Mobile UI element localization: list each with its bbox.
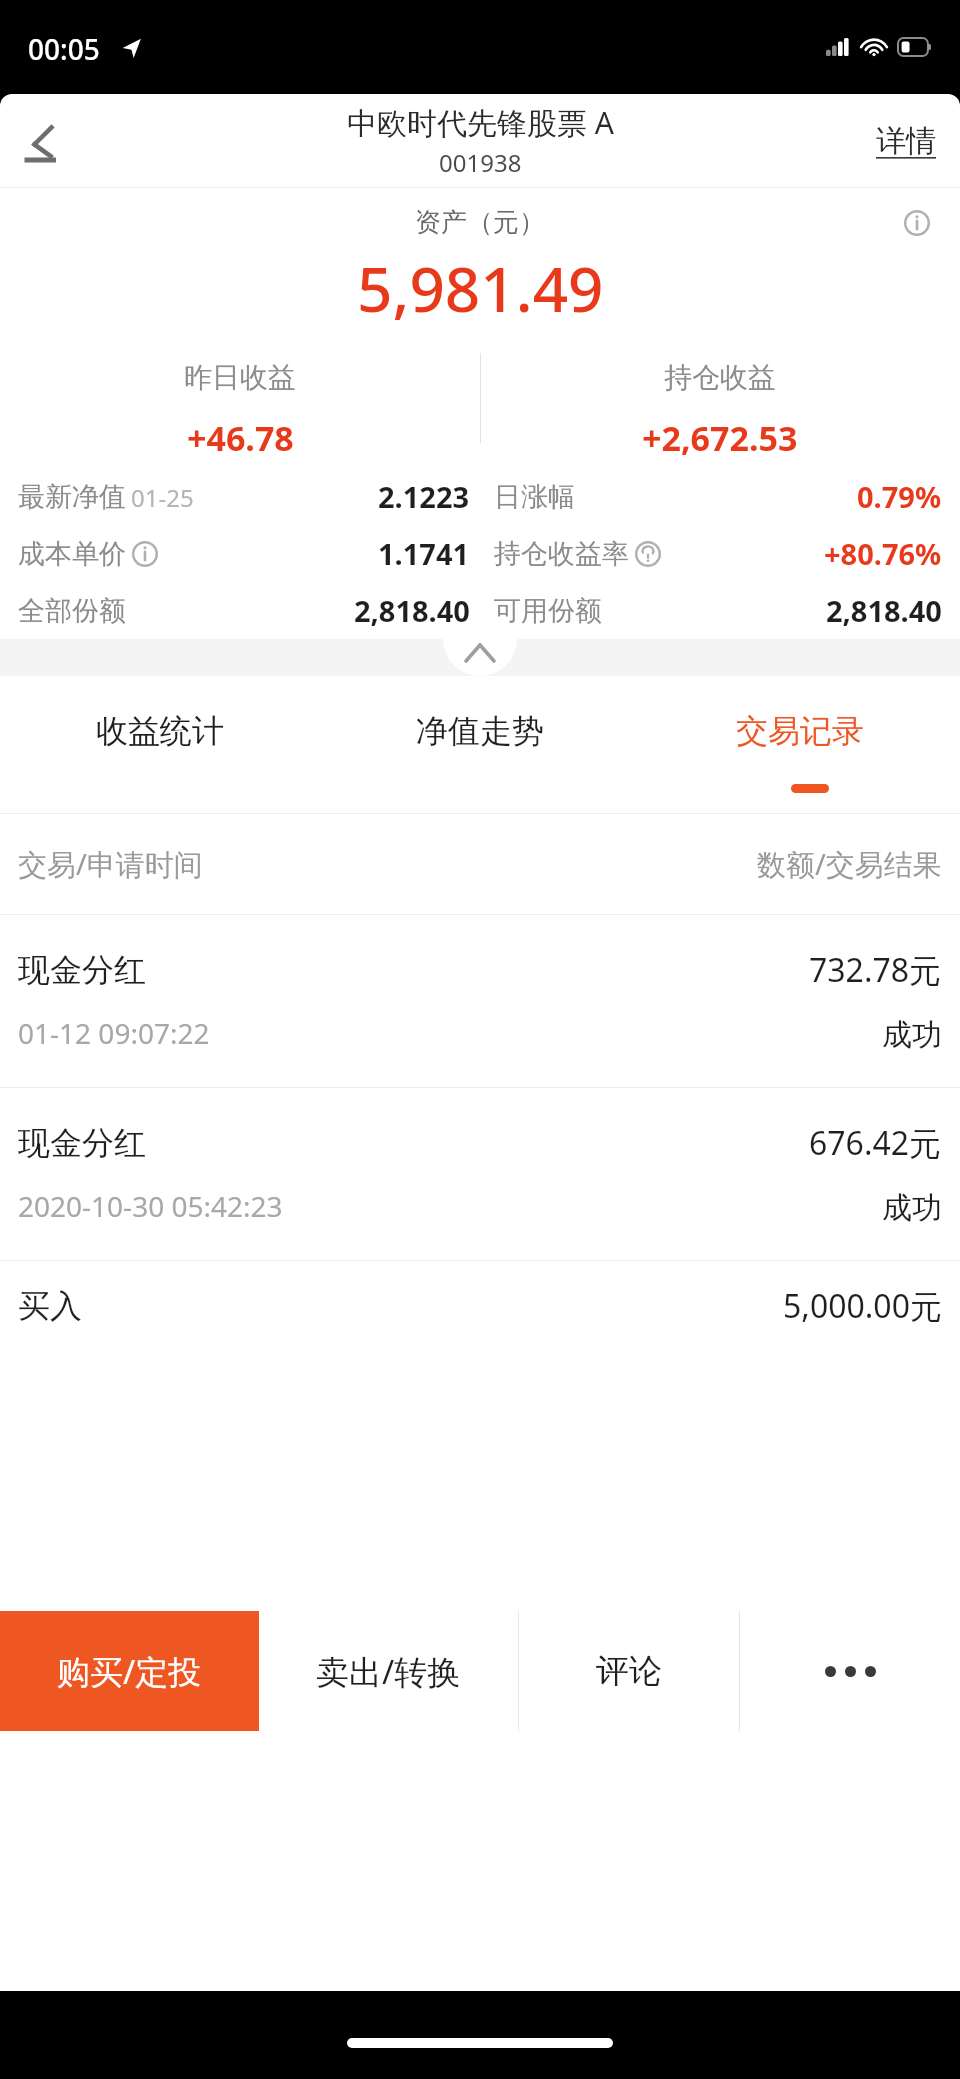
button[interactable]: 现金分红	[0, 1088, 960, 1260]
staticText: 2,818.40	[826, 591, 942, 630]
button[interactable]: 买入	[0, 1261, 960, 1351]
staticText: 评论	[596, 1650, 662, 1692]
staticText: 现金分红	[18, 950, 146, 990]
staticText: 676.42元	[809, 1121, 942, 1165]
staticText: +80.76%	[824, 534, 942, 573]
staticText: 卖出/转换	[316, 1649, 461, 1694]
staticText: 成本单价	[18, 537, 126, 571]
button[interactable]: 评论	[519, 1611, 739, 1731]
staticText: 2.1223	[378, 477, 470, 516]
button[interactable]: 购买/定投	[0, 1611, 259, 1731]
button[interactable]: 净值走势	[320, 676, 640, 786]
staticText: 00:05	[28, 30, 100, 68]
button[interactable]: Cost info	[132, 541, 158, 567]
staticText: 732.78元	[809, 948, 942, 992]
staticText: 0.79%	[857, 477, 942, 516]
staticText: 持仓收益	[664, 360, 776, 395]
staticText: 001938	[439, 146, 522, 179]
button[interactable]: Return rate info	[635, 541, 661, 567]
button[interactable]: 卖出/转换	[259, 1611, 518, 1731]
staticText: +46.78	[187, 415, 294, 458]
staticText: 1.1741	[378, 534, 470, 573]
staticText: 2,818.40	[354, 591, 470, 630]
staticText: 净值走势	[416, 711, 544, 751]
staticText: 最新净值	[18, 480, 126, 514]
staticText: 5,981.49	[357, 246, 604, 330]
staticText: 成功	[882, 1016, 942, 1054]
staticText: 01-12 09:07:22	[18, 1014, 210, 1052]
staticText: 现金分红	[18, 1123, 146, 1163]
button[interactable]: 收益统计	[0, 676, 320, 786]
staticText: 中欧时代先锋股票 A	[347, 102, 614, 143]
staticText: 2020-10-30 05:42:23	[18, 1187, 283, 1225]
staticText: +2,672.53	[642, 415, 798, 458]
staticText: 持仓收益率	[494, 537, 629, 571]
staticText: 详情	[876, 122, 936, 160]
staticText: 全部份额	[18, 594, 126, 628]
staticText: 5,000.00元	[783, 1284, 942, 1328]
button[interactable]: Back	[16, 113, 72, 169]
button[interactable]: Collapse	[443, 639, 517, 676]
staticText: 资产（元）	[415, 206, 545, 239]
staticText: 买入	[18, 1286, 82, 1326]
button[interactable]: Asset info	[892, 198, 942, 248]
staticText: 成功	[882, 1189, 942, 1227]
staticText: 交易记录	[736, 711, 864, 751]
staticText: 昨日收益	[184, 360, 296, 395]
staticText: 日涨幅	[494, 480, 575, 514]
button[interactable]: 交易记录	[640, 676, 960, 786]
staticText: 交易/申请时间	[18, 844, 203, 884]
staticText: 收益统计	[96, 711, 224, 751]
staticText: 可用份额	[494, 594, 602, 628]
staticText: 01-25	[131, 481, 194, 514]
button[interactable]: 现金分红	[0, 915, 960, 1087]
staticText: 购买/定投	[57, 1649, 202, 1694]
button[interactable]: 详情	[870, 114, 942, 168]
button[interactable]: More	[740, 1611, 960, 1731]
staticText: 数额/交易结果	[757, 844, 942, 884]
